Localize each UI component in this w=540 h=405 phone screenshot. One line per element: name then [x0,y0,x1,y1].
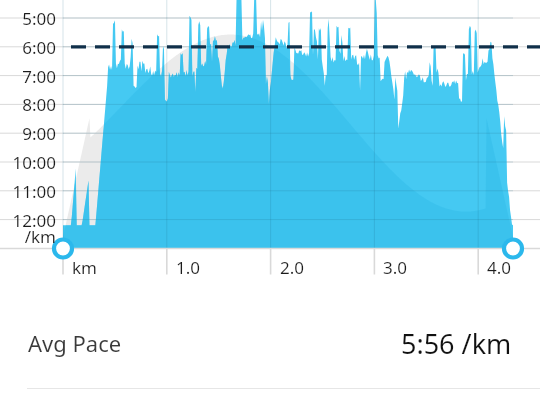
staticText: 4.0 [487,256,540,279]
staticText: 2.0 [280,256,340,279]
button[interactable]: Avg Pace [0,298,540,388]
staticText: 11:00 [0,180,56,203]
staticText: 5:56 /km [401,325,512,362]
staticText: 3.0 [383,256,443,279]
staticText: 8:00 [0,93,56,116]
staticText: 6:00 [0,36,56,59]
staticText: 12:00 [0,209,56,232]
staticText: km [72,256,132,279]
staticText: 7:00 [0,65,56,88]
staticText: 1.0 [176,256,236,279]
staticText: 10:00 [0,151,56,174]
staticText: Avg Pace [28,328,122,358]
staticText: 5:00 [0,7,56,30]
staticText: 9:00 [0,122,56,145]
staticText: /km [0,225,56,248]
